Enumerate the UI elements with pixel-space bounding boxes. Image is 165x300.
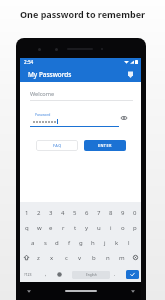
button[interactable]: a: [26, 235, 39, 250]
button[interactable]: f: [63, 235, 75, 250]
staticText: 3: [49, 209, 53, 217]
staticText: 2: [37, 209, 41, 217]
staticText: t: [74, 224, 77, 232]
button[interactable]: Backspace: [129, 250, 141, 265]
button[interactable]: l: [123, 235, 135, 250]
staticText: English: [86, 273, 97, 277]
staticText: q: [25, 224, 29, 232]
button[interactable]: Emoji: [53, 267, 65, 281]
button[interactable]: 0: [129, 205, 141, 220]
button[interactable]: Home: [65, 290, 97, 292]
staticText: d: [55, 239, 59, 247]
button[interactable]: h: [87, 235, 99, 250]
button[interactable]: g: [75, 235, 87, 250]
button[interactable]: y: [81, 220, 93, 235]
button[interactable]: d: [51, 235, 63, 250]
button[interactable]: w: [33, 220, 45, 235]
staticText: One password to remember: [20, 8, 146, 20]
staticText: y: [85, 224, 89, 232]
button[interactable]: FAQ: [36, 140, 78, 151]
staticText: 0: [133, 209, 137, 217]
button[interactable]: s: [39, 235, 51, 250]
button[interactable]: 9: [117, 205, 129, 220]
staticText: Welcome: [30, 90, 55, 98]
staticText: 7: [97, 209, 101, 217]
staticText: Password: [35, 112, 51, 117]
staticText: u: [97, 224, 101, 232]
button[interactable]: c: [59, 250, 73, 265]
button[interactable]: m: [115, 250, 129, 265]
button[interactable]: 4: [57, 205, 69, 220]
staticText: c: [65, 254, 68, 262]
button[interactable]: 3: [45, 205, 57, 220]
staticText: k: [115, 239, 119, 247]
button[interactable]: i: [105, 220, 117, 235]
button[interactable]: z: [32, 250, 45, 265]
staticText: b: [92, 254, 96, 262]
button[interactable]: Shift: [20, 250, 32, 265]
staticText: w: [37, 224, 42, 232]
staticText: v: [78, 254, 82, 262]
staticText: 6: [85, 209, 89, 217]
staticText: ?123: [24, 272, 32, 277]
button[interactable]: t: [69, 220, 81, 235]
staticText: ENTER: [98, 143, 112, 148]
button[interactable]: q: [20, 220, 33, 235]
button[interactable]: ?123: [20, 267, 35, 281]
staticText: ,: [45, 271, 47, 277]
staticText: 5: [73, 209, 77, 217]
staticText: a: [31, 239, 35, 247]
button[interactable]: English: [72, 271, 110, 279]
button[interactable]: e: [45, 220, 57, 235]
staticText: 8: [109, 209, 113, 217]
staticText: m: [119, 254, 125, 262]
button[interactable]: Enter: [126, 270, 139, 279]
button[interactable]: n: [101, 250, 115, 265]
staticText: o: [121, 224, 125, 232]
staticText: 4: [61, 209, 65, 217]
button[interactable]: ,: [40, 267, 52, 281]
staticText: z: [37, 254, 40, 262]
staticText: p: [133, 224, 137, 232]
button[interactable]: k: [111, 235, 123, 250]
button[interactable]: u: [93, 220, 105, 235]
staticText: f: [68, 239, 71, 247]
button[interactable]: 6: [81, 205, 93, 220]
button[interactable]: Show password: [117, 111, 131, 125]
button[interactable]: 8: [105, 205, 117, 220]
staticText: h: [91, 239, 95, 247]
button[interactable]: 7: [93, 205, 105, 220]
button[interactable]: Security: [124, 68, 136, 80]
button[interactable]: ENTER: [84, 140, 126, 151]
staticText: My Passwords: [28, 70, 72, 79]
staticText: i: [110, 224, 112, 232]
button[interactable]: r: [57, 220, 69, 235]
button[interactable]: Back: [23, 286, 34, 297]
staticText: .: [114, 271, 116, 277]
button[interactable]: p: [129, 220, 141, 235]
staticText: FAQ: [53, 143, 62, 148]
staticText: s: [44, 239, 47, 247]
button[interactable]: x: [45, 250, 59, 265]
staticText: 1: [25, 209, 29, 217]
staticText: n: [106, 254, 110, 262]
button[interactable]: 5: [69, 205, 81, 220]
staticText: x: [50, 254, 54, 262]
staticText: 9: [121, 209, 125, 217]
button[interactable]: Recents: [127, 286, 138, 297]
staticText: r: [62, 224, 65, 232]
button[interactable]: j: [99, 235, 111, 250]
button[interactable]: b: [87, 250, 101, 265]
staticText: j: [104, 239, 106, 247]
button[interactable]: 1: [20, 205, 33, 220]
button[interactable]: 2: [33, 205, 45, 220]
staticText: 2:54: [24, 59, 34, 65]
button[interactable]: v: [73, 250, 87, 265]
staticText: e: [49, 224, 53, 232]
button[interactable]: .: [110, 267, 120, 281]
staticText: g: [79, 239, 83, 247]
staticText: l: [128, 239, 130, 247]
button[interactable]: o: [117, 220, 129, 235]
